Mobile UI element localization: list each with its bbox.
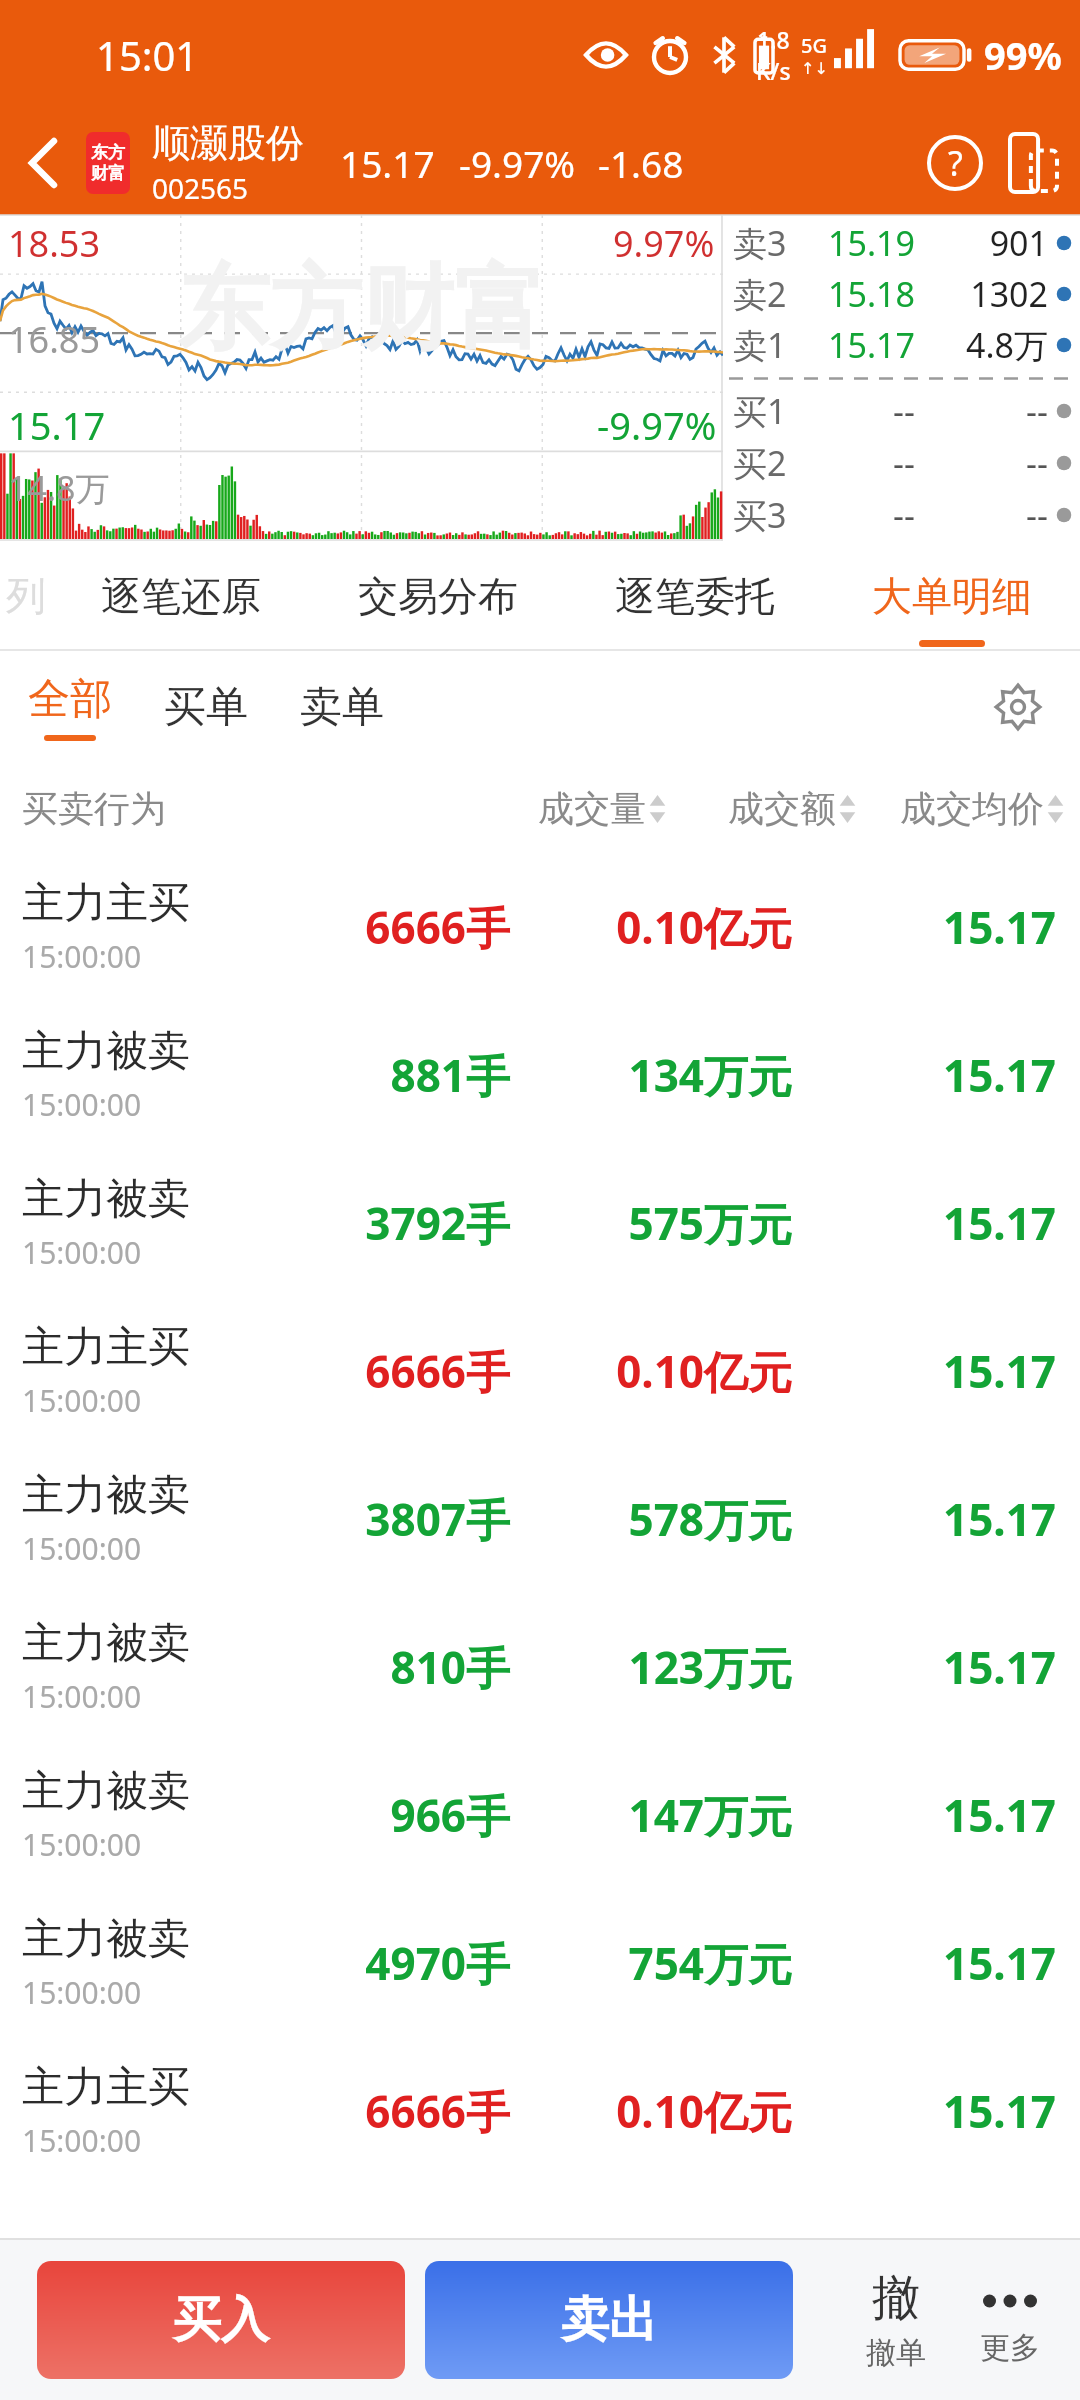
staticText: 14.8万 <box>8 465 110 511</box>
staticText: 1.8 <box>757 24 790 55</box>
button[interactable]: 主力主买 <box>0 853 1080 1001</box>
button[interactable]: 成交额 <box>728 786 856 831</box>
staticText: 逐笔委托 <box>615 571 775 621</box>
staticText: 881手 <box>272 1045 510 1105</box>
staticText: 买1 <box>733 388 807 434</box>
button[interactable]: 主力被卖 <box>0 1741 1080 1889</box>
button[interactable]: 主力主买 <box>0 2037 1080 2185</box>
staticText: -- <box>807 492 915 538</box>
staticText: 15.18 <box>807 271 915 317</box>
staticText: -9.97% <box>597 399 717 451</box>
staticText: 6666手 <box>272 2081 510 2141</box>
staticText: 主力被卖 <box>22 1913 190 1966</box>
staticText: 123万元 <box>510 1637 792 1697</box>
button[interactable]: 买单 <box>158 671 254 744</box>
button[interactable]: Back <box>0 110 86 215</box>
staticText: 15.17 <box>792 2081 1056 2141</box>
staticText: 4.8万 <box>915 322 1048 368</box>
staticText: ↑↓ <box>801 59 828 78</box>
staticText: 15.19 <box>807 220 915 266</box>
button[interactable]: 卖1 <box>723 319 1080 371</box>
staticText: 卖1 <box>733 322 807 368</box>
staticText: 卖出 <box>561 2290 657 2350</box>
staticText: 主力主买 <box>22 1321 190 1374</box>
staticText: 4970手 <box>272 1933 510 1993</box>
button[interactable]: 买2 <box>723 437 1080 489</box>
button[interactable]: 买3 <box>723 489 1080 541</box>
button[interactable]: 列 <box>0 541 52 651</box>
staticText: 列 <box>6 571 46 621</box>
staticText: 002565 <box>152 169 249 207</box>
button[interactable]: Help <box>916 124 994 202</box>
button[interactable]: 逐笔还原 <box>52 541 309 651</box>
button[interactable]: 成交均价 <box>900 786 1064 831</box>
staticText: 0.10亿元 <box>510 897 792 957</box>
staticText: 15.17 <box>792 1193 1056 1253</box>
staticText: 5G <box>801 32 827 59</box>
staticText: 成交额 <box>728 786 836 831</box>
staticText: 15.17 <box>340 138 435 188</box>
button[interactable]: 主力被卖 <box>0 1889 1080 2037</box>
staticText: 15:01 <box>96 28 199 82</box>
staticText: 754万元 <box>510 1933 792 1993</box>
staticText: 卖2 <box>733 271 807 317</box>
staticText: 134万元 <box>510 1045 792 1105</box>
staticText: 主力被卖 <box>22 1025 190 1078</box>
staticText: 578万元 <box>510 1489 792 1549</box>
staticText: 15.17 <box>807 322 915 368</box>
button[interactable]: 卖2 <box>723 268 1080 319</box>
staticText: 3792手 <box>272 1193 510 1253</box>
button[interactable]: 全部 <box>22 673 118 741</box>
button[interactable]: Landscape <box>994 123 1074 203</box>
button[interactable]: 买1 <box>723 385 1080 437</box>
staticText: 15.17 <box>792 1785 1056 1845</box>
button[interactable]: Settings <box>970 659 1066 755</box>
staticText: 更多 <box>980 2329 1040 2367</box>
staticText: 6666手 <box>272 897 510 957</box>
button[interactable]: 成交量 <box>538 786 666 831</box>
staticText: -- <box>915 388 1048 434</box>
staticText: 901 <box>915 220 1048 266</box>
staticText: -- <box>807 388 915 434</box>
staticText: 1302 <box>915 271 1048 317</box>
staticText: -- <box>915 492 1048 538</box>
staticText: 15:00:00 <box>22 1380 142 1421</box>
button[interactable]: 交易分布 <box>309 541 566 651</box>
staticText: -- <box>807 440 915 486</box>
staticText: 15:00:00 <box>22 1084 142 1125</box>
staticText: 15:00:00 <box>22 936 142 977</box>
button[interactable]: 主力被卖 <box>0 1445 1080 1593</box>
staticText: 交易分布 <box>358 571 518 621</box>
staticText: 主力被卖 <box>22 1765 190 1818</box>
staticText: 买入 <box>173 2290 269 2350</box>
staticText: 16.85 <box>8 315 101 364</box>
button[interactable]: 卖单 <box>294 671 390 744</box>
button[interactable]: 主力主买 <box>0 1297 1080 1445</box>
button[interactable]: 主力被卖 <box>0 1001 1080 1149</box>
staticText: 大单明细 <box>872 571 1032 621</box>
button[interactable]: 撤 <box>856 2268 936 2372</box>
button[interactable]: 主力被卖 <box>0 1593 1080 1741</box>
staticText: 15:00:00 <box>22 2120 142 2161</box>
staticText: 撤 <box>872 2268 920 2328</box>
staticText: 9.97% <box>613 219 715 268</box>
button[interactable]: 更多 <box>970 2273 1050 2367</box>
staticText: 0.10亿元 <box>510 2081 792 2141</box>
staticText: 0.10亿元 <box>510 1341 792 1401</box>
button[interactable]: 主力被卖 <box>0 1149 1080 1297</box>
staticText: 主力被卖 <box>22 1173 190 1226</box>
staticText: 主力主买 <box>22 2061 190 2114</box>
staticText: 东方财富 <box>178 251 546 367</box>
staticText: 15:00:00 <box>22 1676 142 1717</box>
button[interactable]: 逐笔委托 <box>566 541 823 651</box>
staticText: 15.17 <box>792 1341 1056 1401</box>
staticText: 撤单 <box>866 2334 926 2372</box>
button[interactable]: 卖出 <box>425 2261 793 2379</box>
staticText: 3807手 <box>272 1489 510 1549</box>
staticText: 966手 <box>272 1785 510 1845</box>
button[interactable]: 卖3 <box>723 217 1080 268</box>
staticText: 15:00:00 <box>22 1972 142 2013</box>
button[interactable]: 买入 <box>37 2261 405 2379</box>
staticText: 财富 <box>91 163 125 184</box>
button[interactable]: 大单明细 <box>823 541 1080 651</box>
